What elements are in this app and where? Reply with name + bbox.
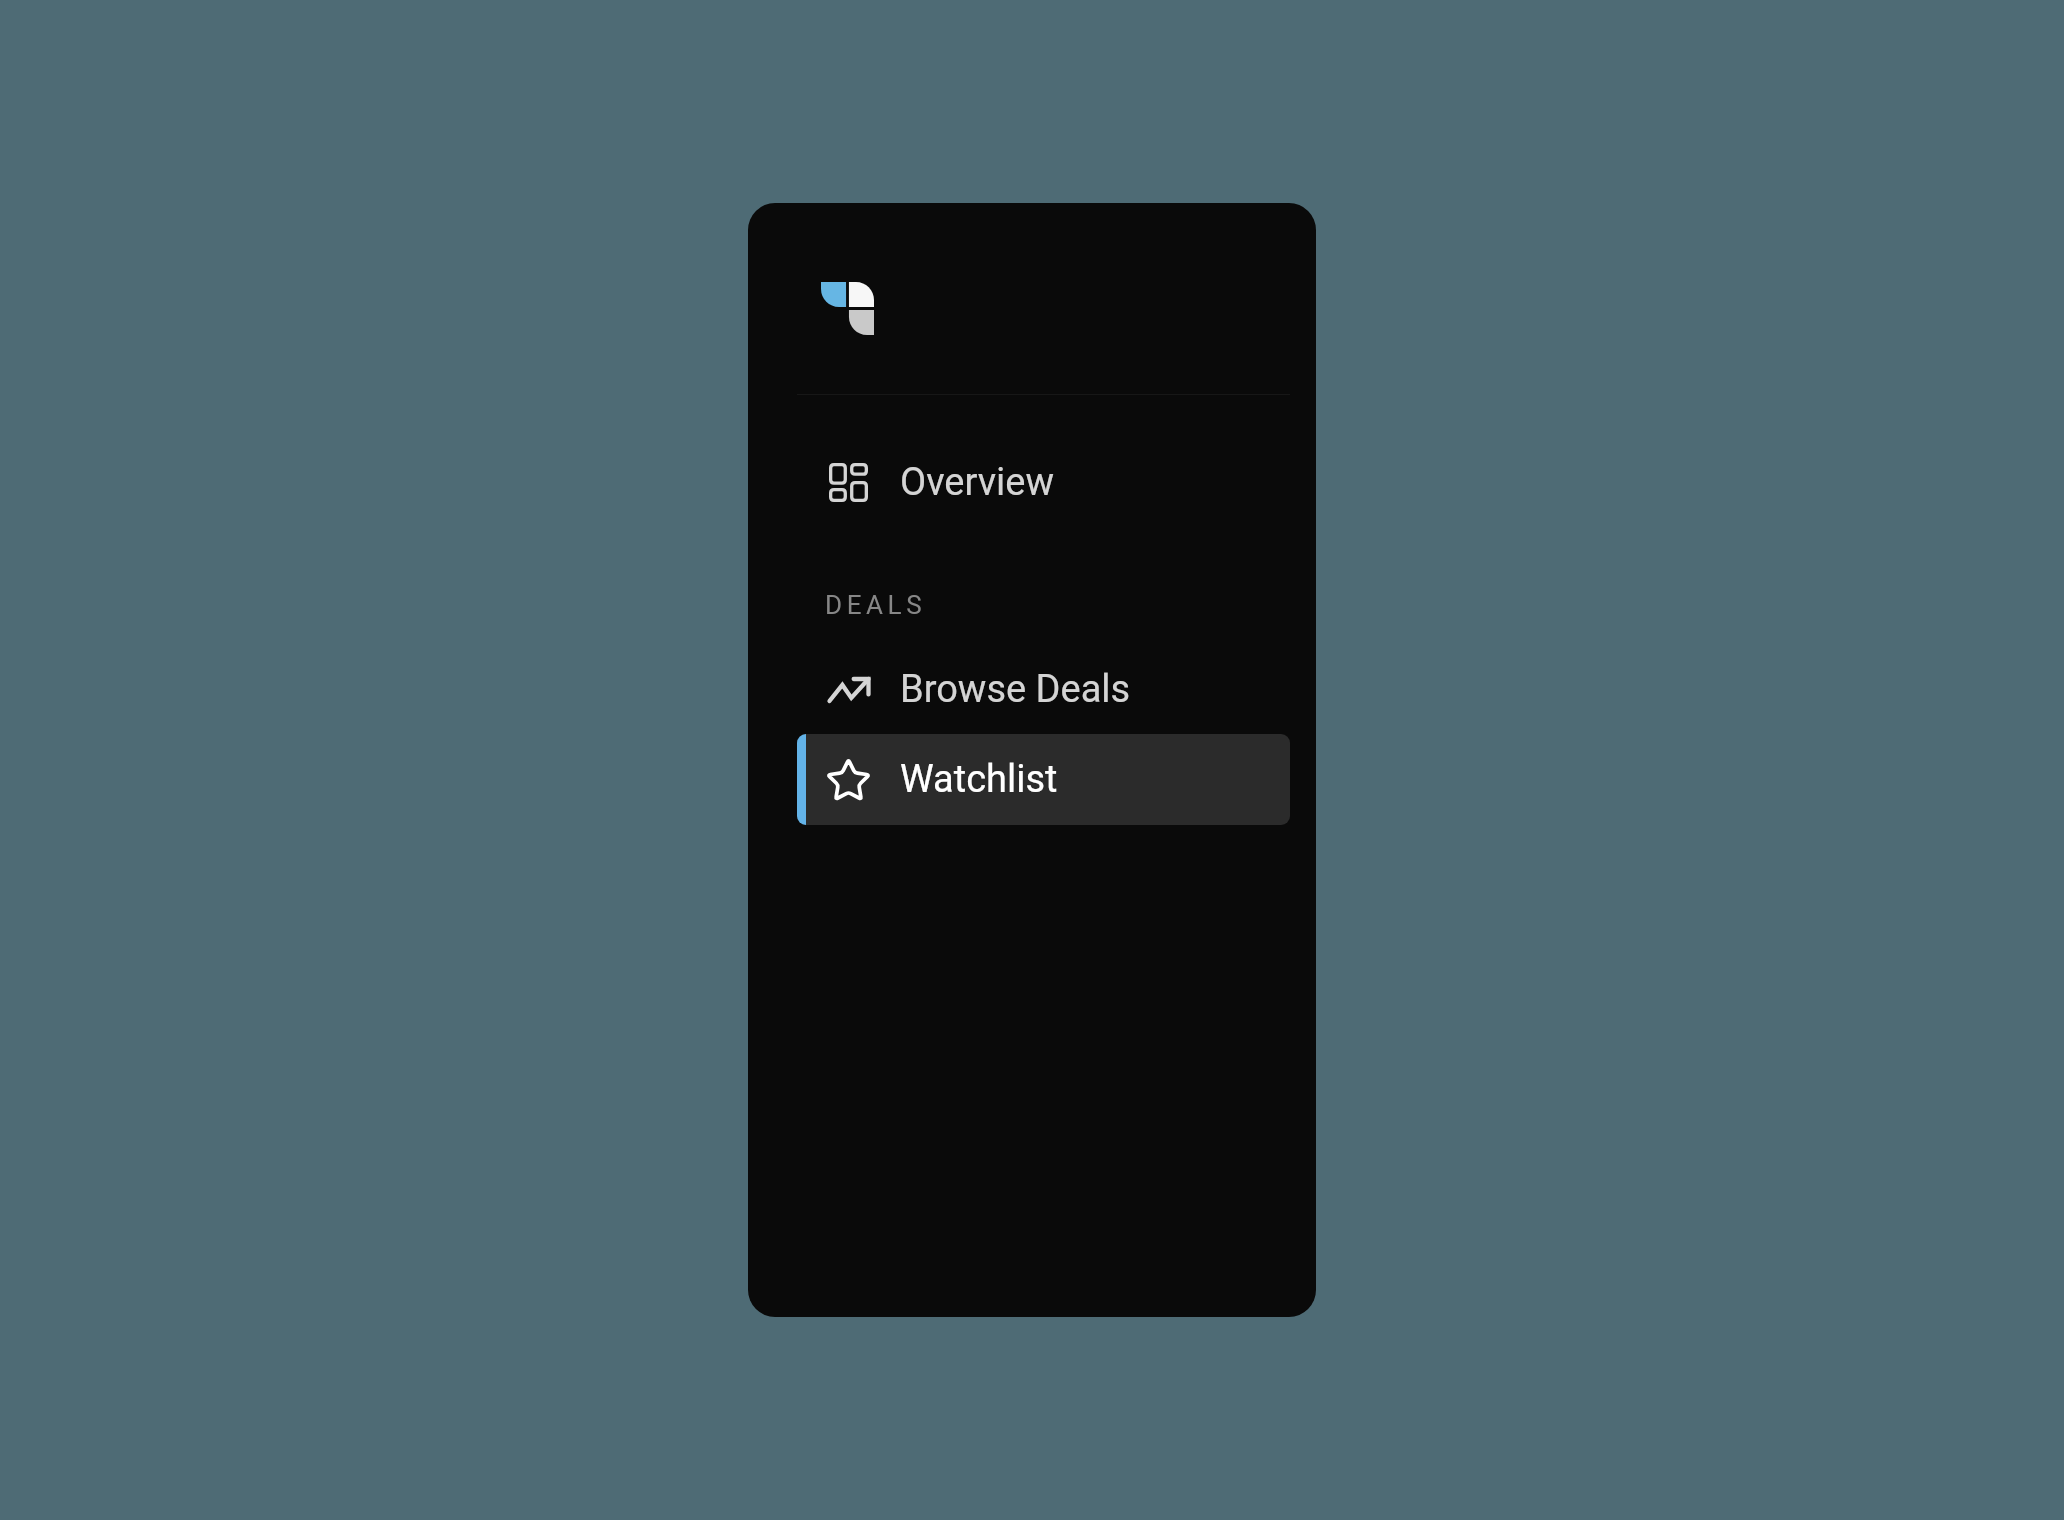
button[interactable]: App logo, go to home (821, 282, 874, 335)
staticText: Browse Deals (900, 667, 1131, 712)
button[interactable]: Browse Deals (797, 644, 1290, 735)
button[interactable]: Overview (797, 437, 1290, 528)
staticText: Watchlist (900, 757, 1058, 802)
staticText: Overview (900, 460, 1055, 505)
staticText: DEALS (825, 590, 927, 620)
button[interactable]: Watchlist (797, 734, 1290, 825)
